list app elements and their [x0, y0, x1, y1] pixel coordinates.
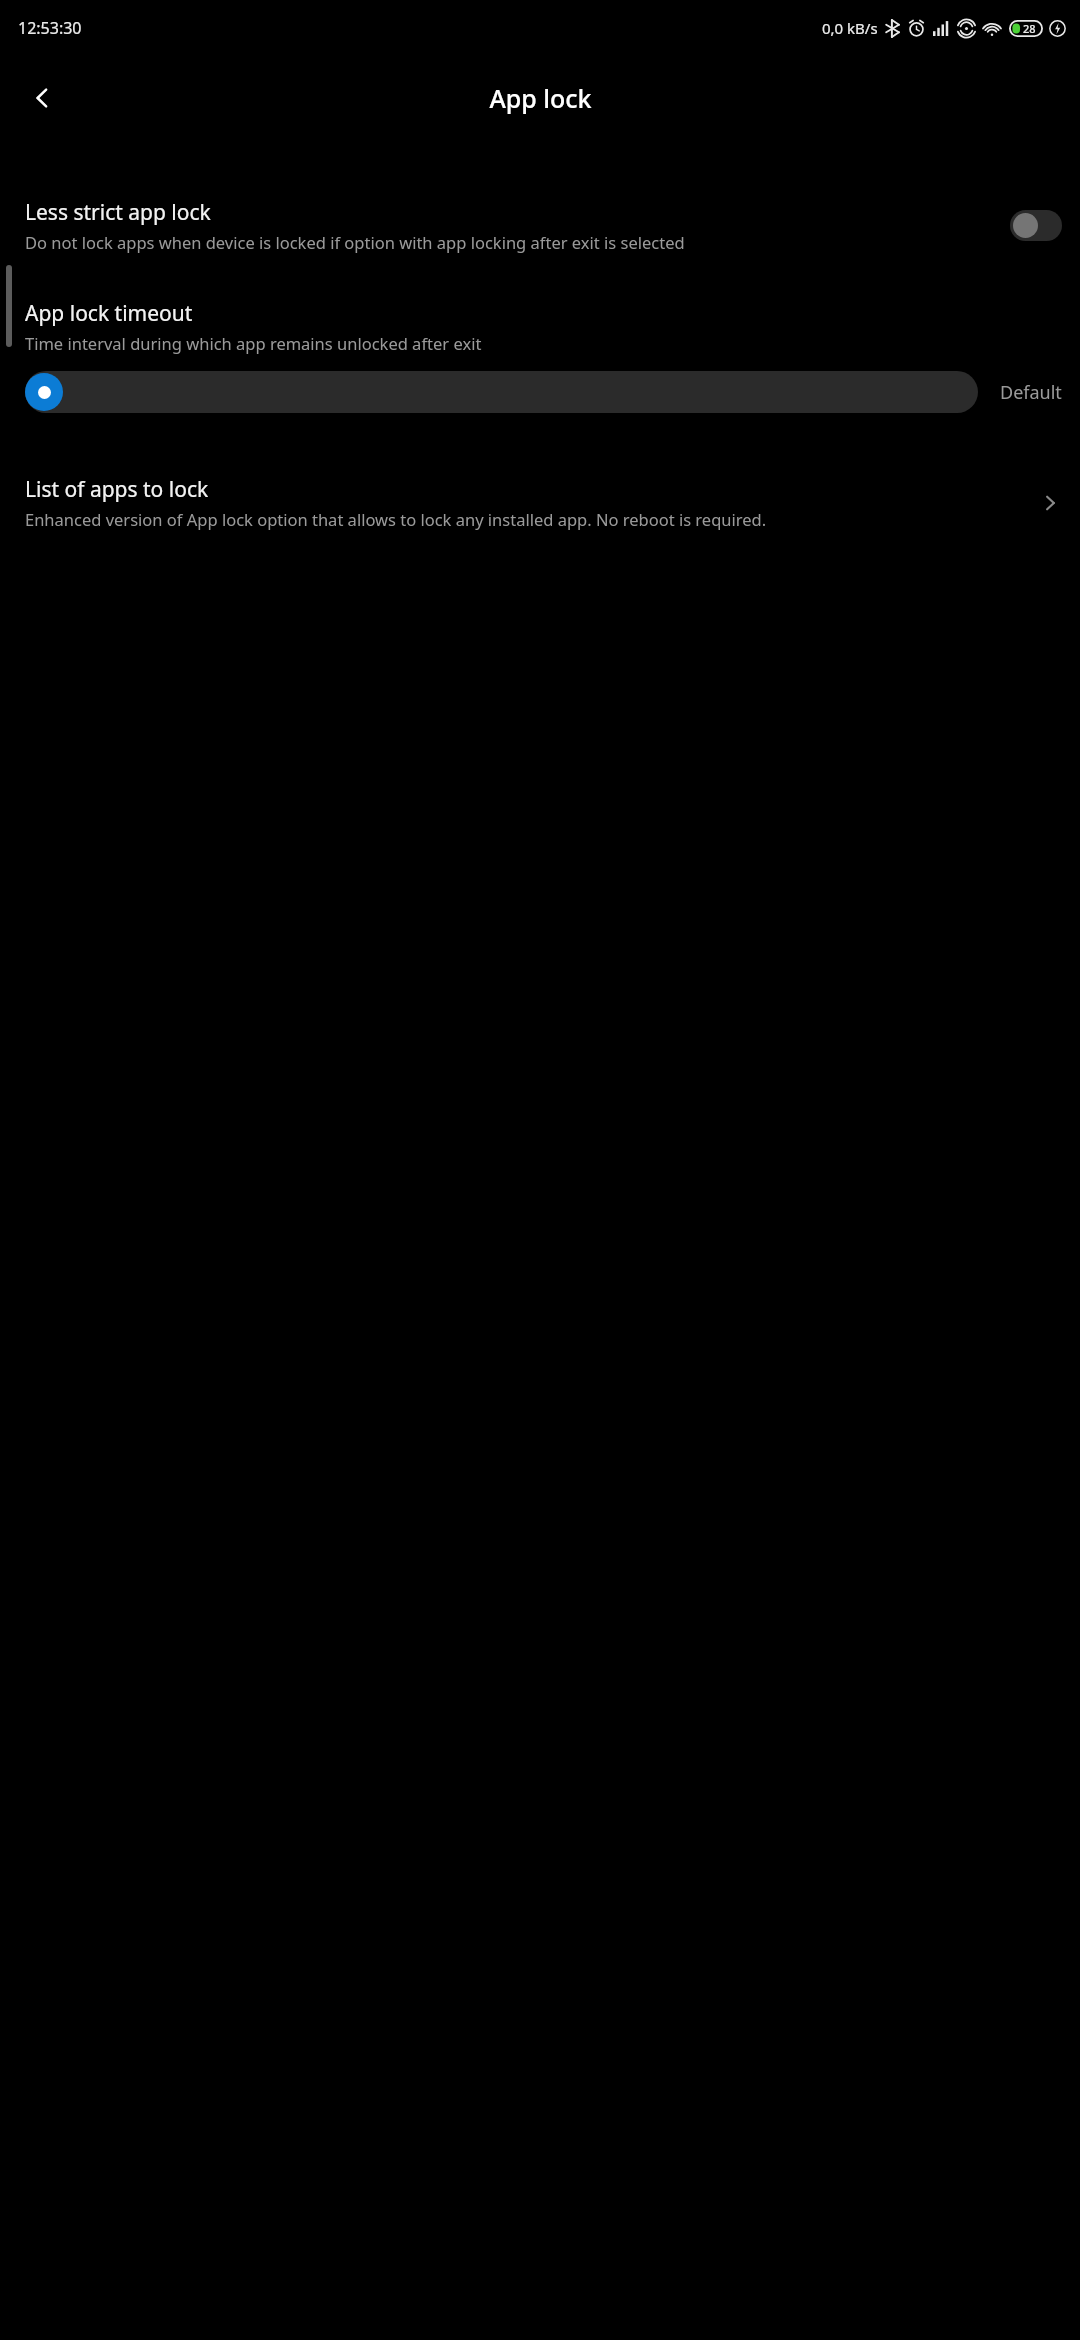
staticText: List of apps to lock: [25, 475, 209, 504]
staticText: Time interval during which app remains u…: [25, 332, 482, 354]
staticText: App lock timeout: [25, 299, 193, 328]
staticText: Enhanced version of App lock option that…: [25, 508, 767, 530]
staticText: Do not lock apps when device is locked i…: [25, 231, 685, 253]
button[interactable]: Less strict app lock: [0, 198, 1080, 253]
staticText: 12:53:30: [18, 17, 82, 39]
button[interactable]: Back: [14, 70, 70, 126]
staticText: 28: [1023, 21, 1036, 36]
staticText: App lock: [489, 81, 592, 115]
button[interactable]: [1010, 210, 1062, 241]
staticText: 0,0 kB/s: [822, 18, 878, 38]
button[interactable]: List of apps to lock: [0, 475, 1080, 530]
button[interactable]: App lock timeout: [0, 299, 1080, 413]
staticText: Default: [1000, 380, 1062, 405]
staticText: Less strict app lock: [25, 198, 211, 227]
